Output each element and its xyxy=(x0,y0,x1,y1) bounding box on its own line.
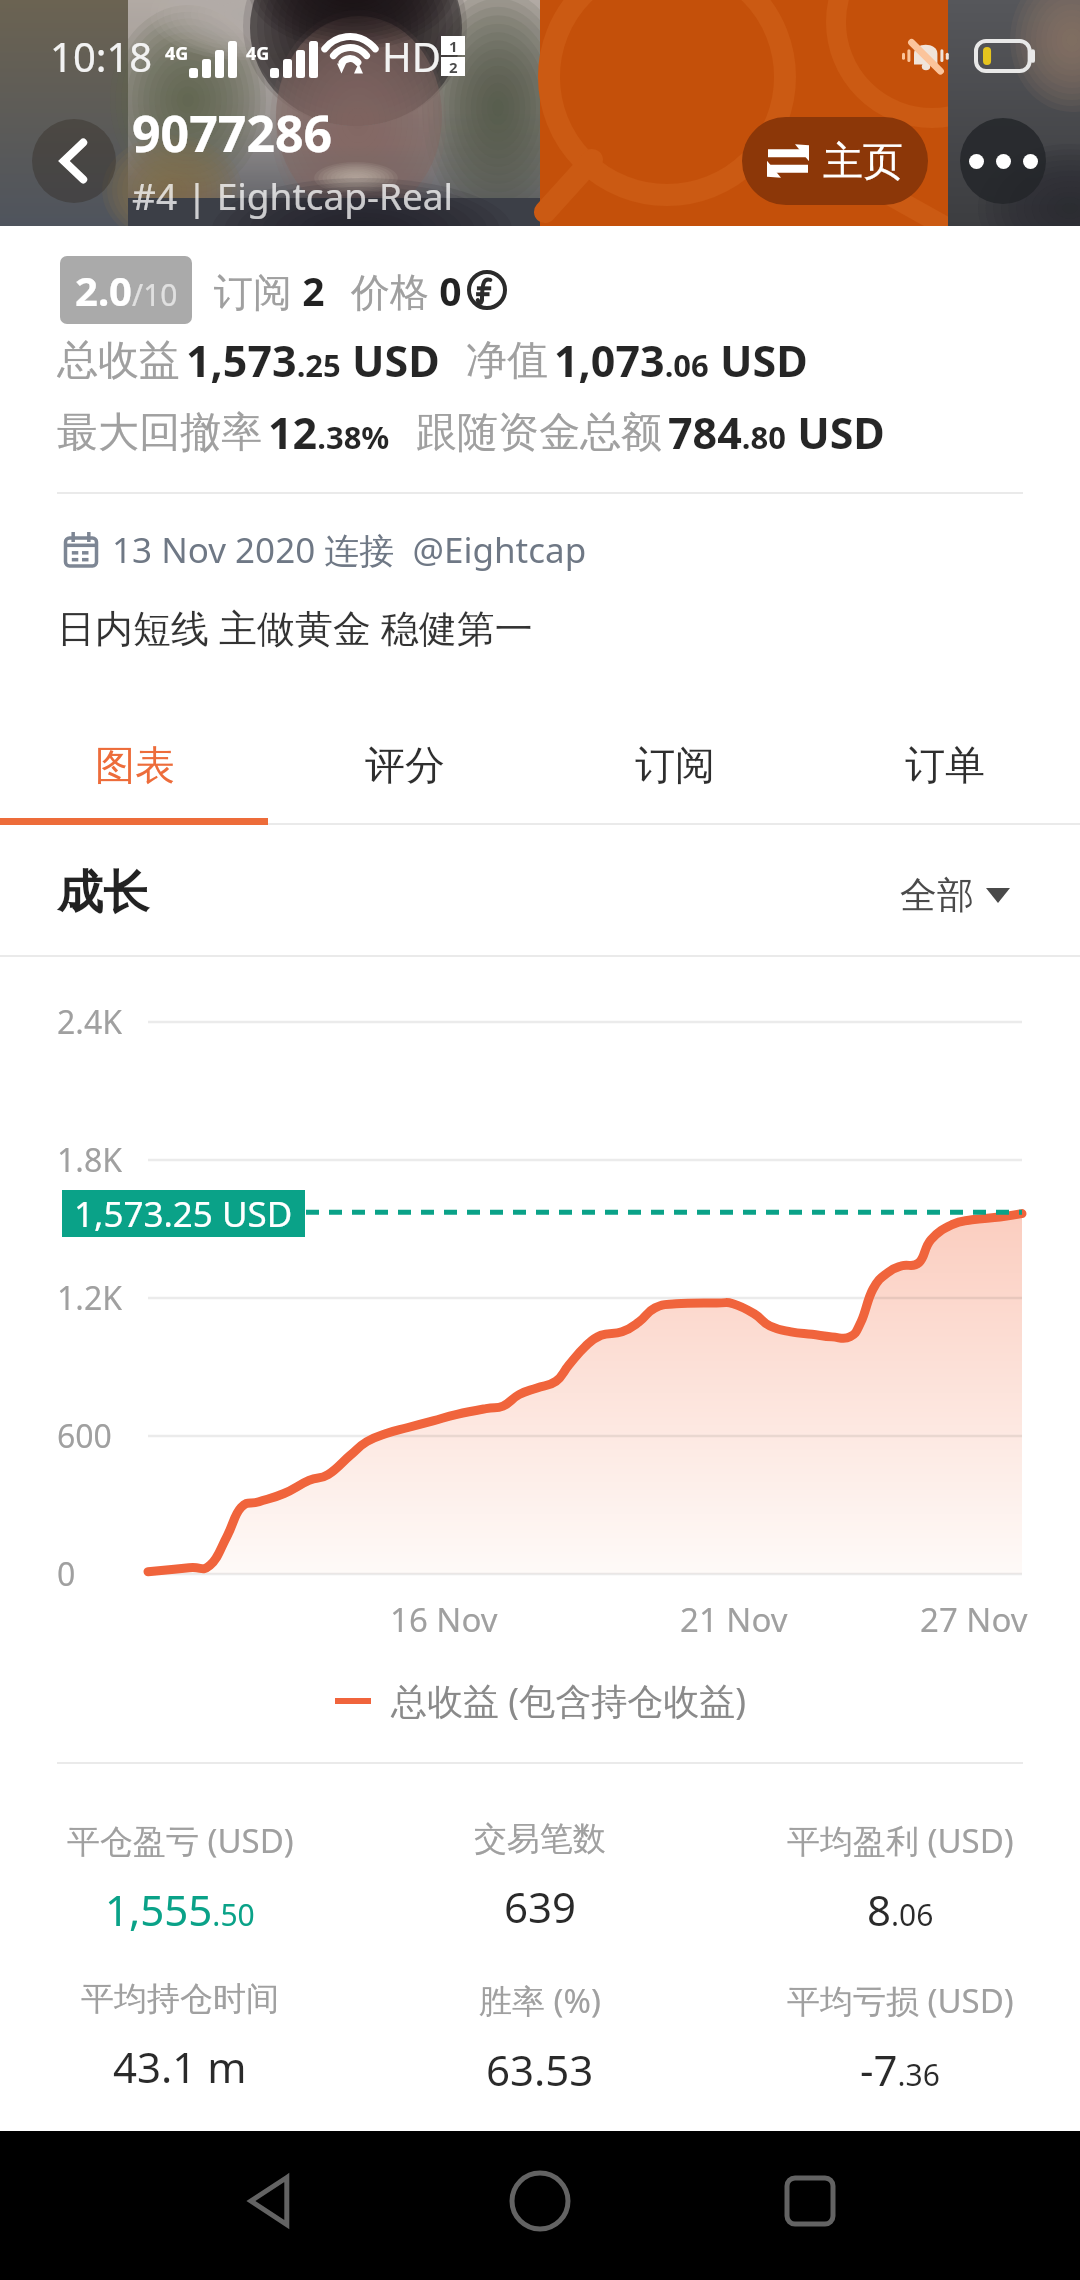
staticText: #4 | Eightcap-Real xyxy=(132,170,454,220)
button[interactable]: Home xyxy=(495,2156,585,2246)
staticText: 胜率 (%) xyxy=(479,1978,601,2023)
staticText: 价格 0 xyxy=(351,264,462,317)
button[interactable]: Recent apps xyxy=(765,2156,855,2246)
staticText: 平均盈利 (USD) xyxy=(787,1818,1014,1863)
staticText: 639 xyxy=(504,1878,577,1935)
staticText: 1.8K xyxy=(57,1138,122,1182)
button[interactable]: More options xyxy=(960,118,1046,204)
button[interactable]: 图表 xyxy=(0,705,270,825)
staticText: 1 xyxy=(449,36,458,55)
staticText: 1.2K xyxy=(57,1276,122,1320)
staticText: 1,573.25 USD xyxy=(186,331,440,390)
staticText: 1,073.06 USD xyxy=(554,331,808,390)
staticText: 订阅 2 xyxy=(214,264,325,317)
staticText: 评分 xyxy=(365,740,445,790)
staticText: 63.53 xyxy=(486,2041,594,2098)
button[interactable]: 主页 xyxy=(742,117,928,205)
staticText: -7.36 xyxy=(860,2041,940,2098)
staticText: 16 Nov xyxy=(390,1597,498,1642)
staticText: 43.1 m xyxy=(113,2038,247,2095)
staticText: 2.4K xyxy=(57,1000,122,1044)
staticText: 12.38% xyxy=(268,403,390,462)
staticText: 1,573.25 USD xyxy=(74,1190,293,1237)
staticText: 最大回撤率 xyxy=(57,407,262,459)
staticText: 13 Nov 2020 连接 @Eightcap xyxy=(112,526,587,574)
staticText: 4G xyxy=(246,41,270,66)
staticText: 784.80 USD xyxy=(668,403,885,462)
staticText: 成长 xyxy=(57,864,149,922)
staticText: 平均亏损 (USD) xyxy=(787,1978,1014,2023)
staticText: 0 xyxy=(57,1552,76,1596)
staticText: 27 Nov xyxy=(920,1597,1028,1642)
staticText: 净值 xyxy=(466,335,548,387)
staticText: 日内短线 主做黄金 稳健第一 xyxy=(57,601,533,653)
staticText: 21 Nov xyxy=(680,1597,788,1642)
staticText: 平均持仓时间 xyxy=(81,1978,279,2020)
staticText: 图表 xyxy=(95,740,175,790)
staticText: 8.06 xyxy=(867,1881,934,1938)
button[interactable]: 订阅 xyxy=(540,705,810,825)
staticText: 600 xyxy=(57,1414,112,1458)
staticText: HD xyxy=(382,29,441,83)
button[interactable]: 全部 xyxy=(900,872,1010,919)
staticText: 全部 xyxy=(900,872,974,919)
button[interactable]: 评分 xyxy=(270,705,540,825)
staticText: 2.0/10 xyxy=(75,263,178,317)
staticText: 9077286 xyxy=(132,99,333,167)
staticText: 订阅 xyxy=(635,740,715,790)
staticText: 总收益 xyxy=(57,335,180,387)
staticText: 2 xyxy=(449,57,458,76)
staticText: 总收益 (包含持仓收益) xyxy=(391,1676,746,1725)
staticText: 主页 xyxy=(823,136,903,186)
staticText: 1,555.50 xyxy=(105,1881,255,1938)
staticText: 订单 xyxy=(905,740,985,790)
staticText: 4G xyxy=(165,41,189,66)
staticText: 跟随资金总额 xyxy=(416,407,662,459)
button[interactable]: Back xyxy=(225,2156,315,2246)
staticText: 10:18 xyxy=(50,29,153,83)
button[interactable]: 订单 xyxy=(810,705,1080,825)
button[interactable]: Back xyxy=(32,119,116,203)
staticText: 交易笔数 xyxy=(474,1818,606,1860)
staticText: 平仓盈亏 (USD) xyxy=(67,1818,294,1863)
